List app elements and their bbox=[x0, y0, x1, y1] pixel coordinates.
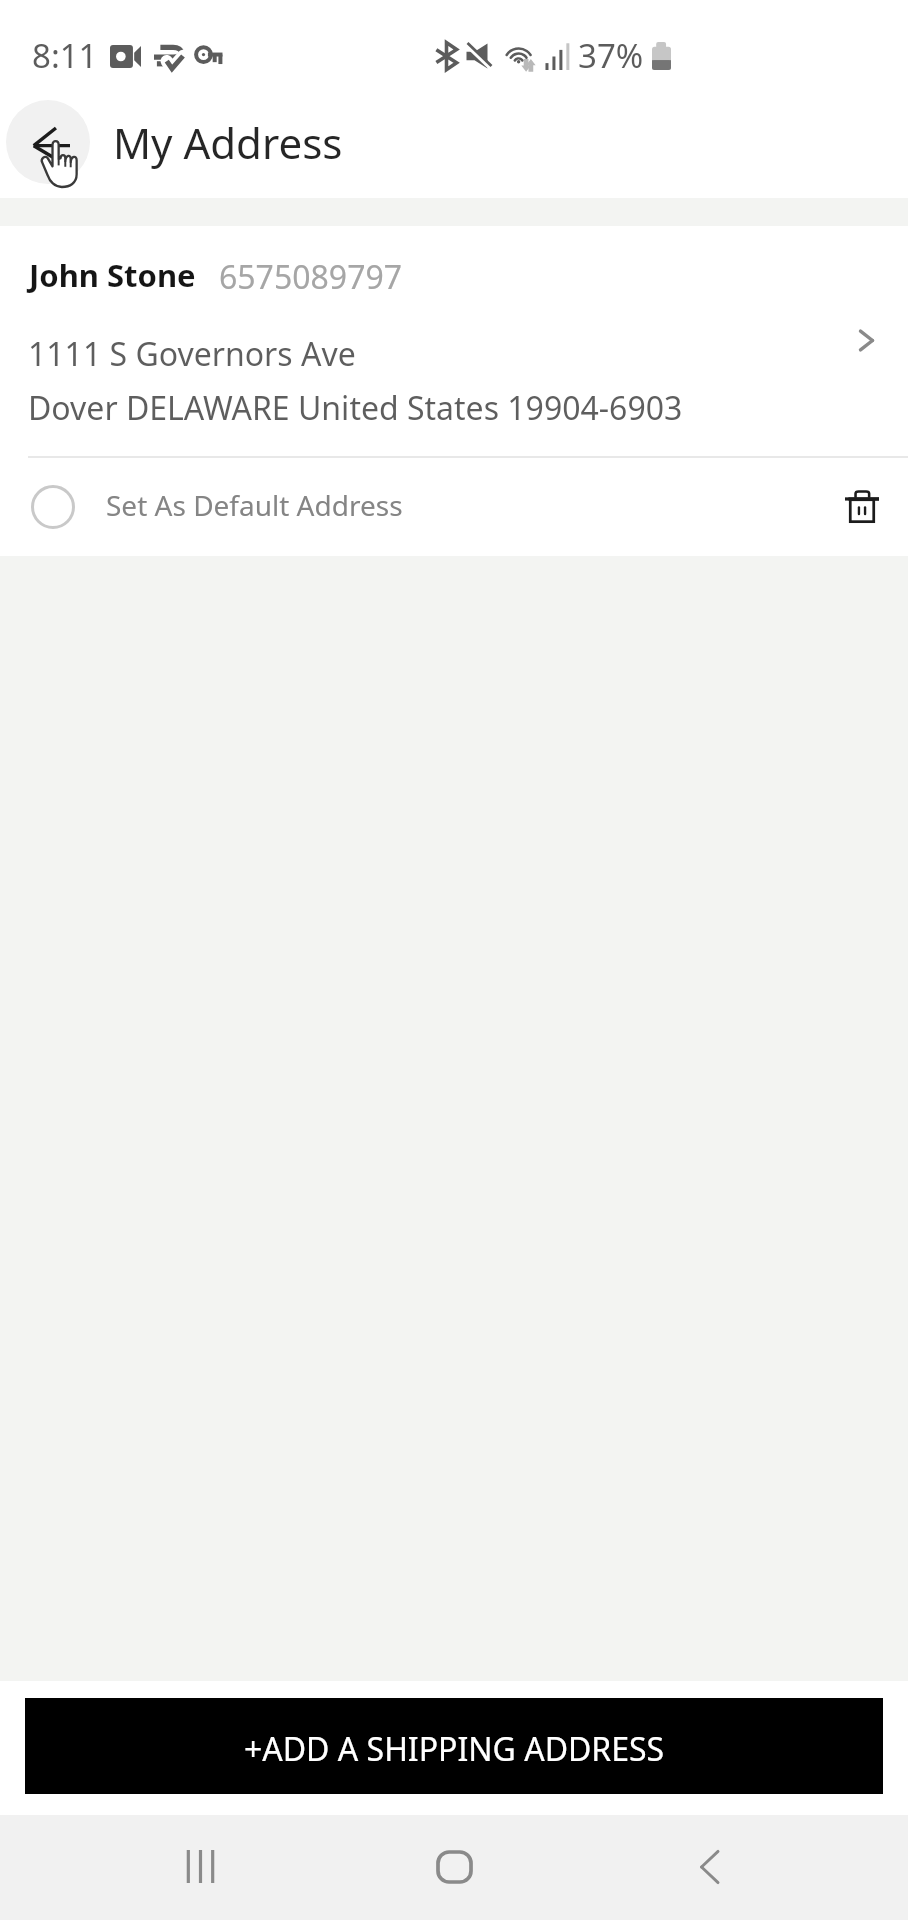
staticText: 37% bbox=[578, 33, 644, 78]
button[interactable]: John Stone bbox=[0, 226, 908, 456]
button[interactable]: Home bbox=[406, 1819, 502, 1915]
staticText: My Address bbox=[113, 114, 343, 171]
button[interactable]: Edit address bbox=[846, 320, 886, 360]
staticText: 1111 S Governors Ave bbox=[28, 332, 356, 376]
button[interactable]: Back bbox=[661, 1819, 757, 1915]
button[interactable]: Set As Default Address bbox=[0, 457, 726, 556]
button[interactable]: Back bbox=[6, 100, 90, 184]
button[interactable]: Recent apps bbox=[152, 1818, 248, 1914]
staticText: Dover DELAWARE United States 19904-6903 bbox=[28, 386, 683, 430]
staticText: John Stone bbox=[29, 254, 196, 296]
button[interactable]: +ADD A SHIPPING ADDRESS bbox=[25, 1698, 883, 1794]
staticText: 6575089797 bbox=[219, 255, 403, 299]
button[interactable]: Delete address bbox=[834, 478, 890, 534]
staticText: Set As Default Address bbox=[106, 486, 403, 524]
staticText: 8:11 bbox=[32, 33, 98, 78]
staticText: +ADD A SHIPPING ADDRESS bbox=[244, 1727, 665, 1771]
